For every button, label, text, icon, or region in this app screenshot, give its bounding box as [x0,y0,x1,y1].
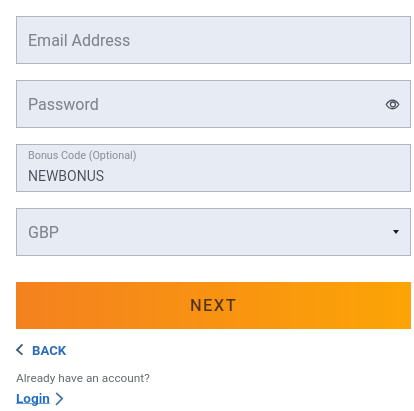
button[interactable]: BACK [15,341,67,359]
staticText: Bonus Code (Optional) [28,149,137,162]
button[interactable]: Password [16,80,411,128]
button[interactable]: Show password [379,81,405,127]
staticText: BACK [32,343,67,358]
button[interactable]: Login [16,389,63,407]
staticText: GBP [28,223,386,242]
button[interactable]: Email Address [16,16,411,64]
staticText: NEWBONUS [28,168,105,184]
button[interactable]: GBP [16,208,411,256]
staticText: Email Address [28,31,131,50]
staticText: Login [16,390,50,406]
staticText: Password [28,95,379,114]
staticText: Already have an account? [16,371,150,385]
button[interactable]: NEXT [16,282,411,329]
staticText: NEXT [190,296,238,315]
button[interactable]: Bonus Code (Optional) [16,144,411,192]
button[interactable]: Select currency [386,209,406,255]
